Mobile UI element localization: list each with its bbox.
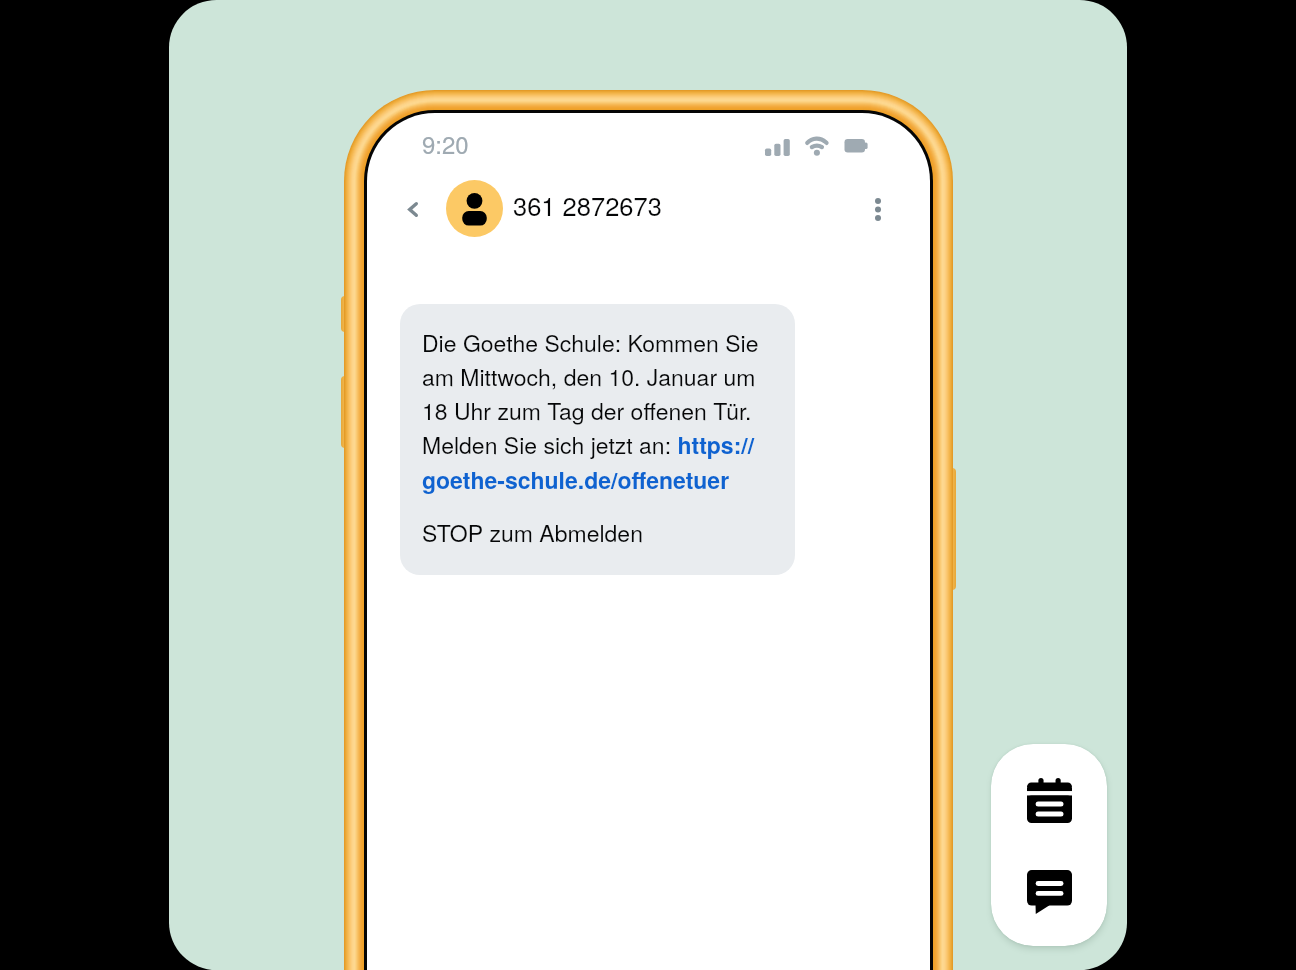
button[interactable]: Die Goethe Schule: Kommen Sie am Mittwoc…: [400, 304, 795, 575]
staticText: Die Goethe Schule: Kommen Sie am Mittwoc…: [422, 325, 771, 496]
button[interactable]: Back: [389, 185, 437, 233]
button[interactable]: 361 2872673: [446, 180, 663, 237]
button[interactable]: More options: [854, 185, 902, 233]
staticText: 361 2872673: [513, 187, 662, 224]
staticText: STOP zum Abmelden: [422, 516, 643, 549]
button[interactable]: Calendar: [1014, 766, 1084, 834]
staticText: 9:20: [422, 126, 469, 160]
button[interactable]: Messages: [1014, 858, 1084, 926]
